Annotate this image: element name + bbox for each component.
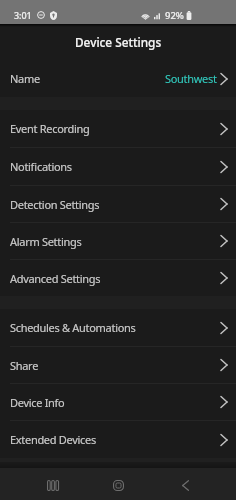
button[interactable]: Advanced Settings	[0, 260, 236, 296]
staticText: Notifications	[10, 159, 72, 174]
button[interactable]: Share	[0, 347, 236, 383]
button[interactable]: Event Recording	[0, 110, 236, 147]
staticText: Device Info	[10, 395, 65, 410]
button[interactable]: Alarm Settings	[0, 223, 236, 259]
button[interactable]: Name	[0, 60, 236, 97]
button[interactable]: Recent apps	[19, 468, 85, 500]
button[interactable]: Detection Settings	[0, 186, 236, 222]
staticText: Event Recording	[10, 121, 90, 136]
staticText: Extended Devices	[10, 432, 96, 447]
button[interactable]: Schedules & Automations	[0, 309, 236, 346]
staticText: Southwest	[165, 71, 217, 86]
button[interactable]: Back	[151, 468, 217, 500]
button[interactable]: Extended Devices	[0, 421, 236, 458]
staticText: Detection Settings	[10, 197, 100, 212]
button[interactable]: Home	[85, 468, 151, 500]
staticText: Share	[10, 358, 39, 373]
staticText: 3:01	[14, 9, 32, 21]
staticText: Device Settings	[75, 34, 162, 50]
button[interactable]: Notifications	[0, 148, 236, 185]
button[interactable]: Device Info	[0, 384, 236, 420]
staticText: Advanced Settings	[10, 271, 101, 286]
staticText: Alarm Settings	[10, 234, 82, 249]
staticText: Schedules & Automations	[10, 320, 136, 335]
staticText: 92%	[165, 9, 184, 22]
staticText: Name	[10, 71, 40, 86]
